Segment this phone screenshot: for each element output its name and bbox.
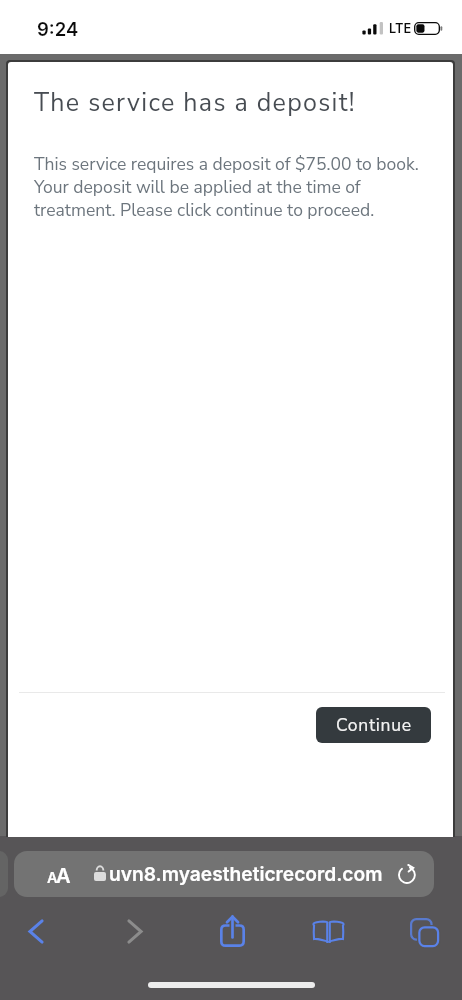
button[interactable]: Bookmarks — [304, 907, 352, 955]
button[interactable]: Continue — [316, 707, 431, 743]
button[interactable]: Back — [12, 907, 60, 955]
staticText: Continue — [336, 713, 412, 737]
staticText: A — [56, 864, 71, 888]
button[interactable]: Text size options — [14, 851, 434, 897]
button[interactable]: Text size options — [42, 859, 72, 889]
button[interactable]: Tabs — [401, 907, 449, 955]
staticText: A — [47, 869, 58, 887]
button[interactable]: Share — [208, 907, 256, 955]
staticText: uvn8.myaestheticrecord.com — [109, 862, 383, 885]
button[interactable]: Forward — [111, 907, 159, 955]
staticText: The service has a deposit! — [34, 86, 356, 120]
staticText: 9:24 — [37, 18, 79, 40]
button[interactable]: Reload page — [398, 864, 419, 885]
staticText: LTE — [389, 21, 412, 36]
staticText: This service requires a deposit of $75.0… — [34, 152, 425, 222]
